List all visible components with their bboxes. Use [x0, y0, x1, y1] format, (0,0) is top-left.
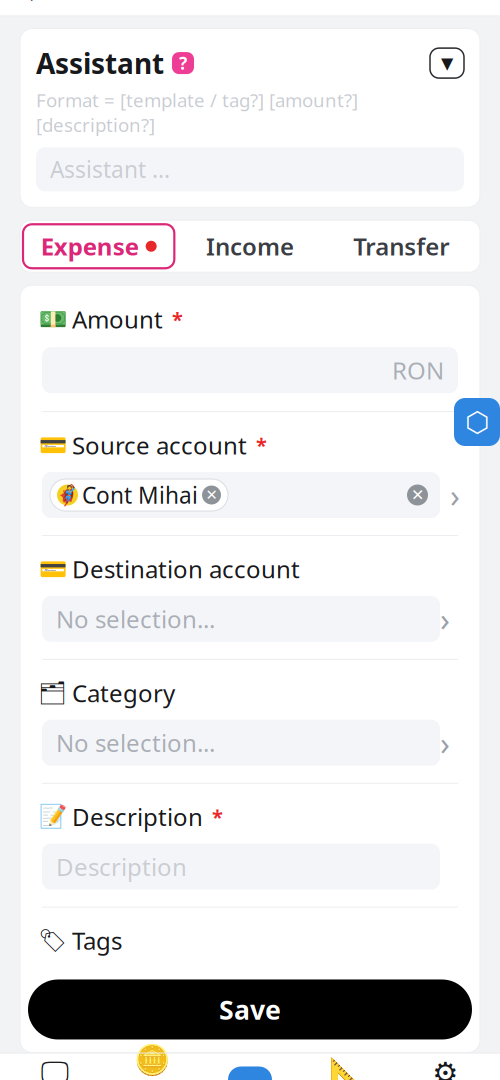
staticText: Income — [206, 230, 294, 262]
staticText: Cont Mihai — [82, 480, 198, 510]
staticText: ? — [179, 52, 187, 75]
button[interactable]: Quick actions — [454, 398, 500, 446]
button[interactable]: 🦸 — [42, 472, 480, 518]
staticText: Save — [219, 992, 281, 1027]
staticText: 📐 — [329, 1056, 366, 1080]
button[interactable]: No selection... — [42, 596, 480, 642]
staticText: 💳 — [38, 556, 66, 582]
button[interactable]: No selection... — [42, 720, 480, 766]
staticText: ▼ — [441, 54, 453, 72]
button[interactable]: Transfer — [326, 224, 477, 268]
staticText: › — [440, 598, 474, 640]
button[interactable]: 🪙 — [104, 1057, 201, 1080]
staticText: Category — [72, 677, 175, 709]
staticText: ‹ — [22, 0, 36, 16]
staticText: * — [256, 432, 267, 458]
staticText: 📝 — [38, 804, 66, 830]
staticText: ⚙ — [432, 1057, 458, 1080]
staticText: 💵 — [38, 306, 66, 332]
staticText: 🏷 — [38, 928, 67, 953]
staticText: ⬡ — [465, 406, 489, 438]
button[interactable]: Income — [174, 224, 326, 268]
staticText: + — [240, 1065, 260, 1080]
staticText: Description — [72, 801, 203, 833]
button[interactable]: Add — [228, 1066, 272, 1080]
staticText: 🗂 — [38, 680, 67, 706]
button[interactable]: 🖵 — [6, 1057, 104, 1080]
staticText: * — [172, 306, 183, 332]
staticText: Transfer — [353, 230, 449, 262]
button[interactable]: Back — [0, 0, 58, 14]
staticText: Source account — [72, 429, 247, 461]
button[interactable]: Expense — [23, 224, 174, 268]
staticText: 🪙 — [134, 1043, 171, 1077]
staticText: Assistant — [36, 44, 164, 82]
staticText: 🦸 — [55, 484, 80, 506]
staticText: › — [450, 474, 460, 516]
staticText: Amount — [72, 303, 163, 335]
button[interactable]: Expand assistant — [430, 48, 464, 78]
staticText: 💳 — [38, 432, 66, 458]
staticText: ✕ — [411, 486, 424, 504]
staticText: Description — [56, 851, 187, 883]
staticText: No selection... — [56, 727, 215, 759]
staticText: Format = [template / tag?] [amount?] [de… — [36, 88, 358, 137]
staticText: Tags — [72, 925, 122, 956]
staticText: ✕ — [205, 487, 217, 503]
staticText: Assistant ... — [50, 154, 170, 184]
button[interactable]: Save — [28, 979, 472, 1039]
staticText: › — [440, 721, 474, 764]
staticText: No selection... — [56, 603, 215, 635]
staticText: * — [212, 803, 223, 830]
staticText: Destination account — [72, 553, 300, 585]
staticText: 🖵 — [41, 1059, 69, 1080]
staticText: Expense — [41, 230, 139, 262]
staticText: RON — [392, 354, 444, 386]
button[interactable]: ⚙ — [396, 1057, 494, 1080]
button[interactable]: 📐 — [299, 1057, 396, 1080]
